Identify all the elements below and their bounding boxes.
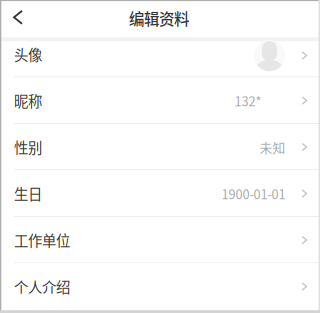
staticText: 性别 bbox=[14, 137, 42, 157]
staticText: 昵称 bbox=[14, 90, 42, 111]
staticText: 编辑资料 bbox=[129, 7, 189, 29]
staticText: 工作单位 bbox=[14, 230, 70, 250]
button[interactable]: 昵称 bbox=[0, 77, 320, 124]
staticText: 1900-01-01 bbox=[221, 184, 285, 203]
staticText: 个人介绍 bbox=[14, 276, 70, 297]
button[interactable]: 个人介绍 bbox=[0, 263, 320, 310]
staticText: 132* bbox=[234, 91, 285, 110]
button[interactable]: 头像 bbox=[0, 41, 320, 77]
button[interactable]: 性别 bbox=[0, 124, 320, 170]
staticText: 生日 bbox=[14, 183, 42, 204]
staticText: 未知 bbox=[259, 138, 285, 156]
button[interactable]: 生日 bbox=[0, 170, 320, 217]
button[interactable]: 工作单位 bbox=[0, 217, 320, 263]
staticText: 头像 bbox=[14, 44, 42, 65]
button[interactable]: Back bbox=[5, 4, 31, 34]
